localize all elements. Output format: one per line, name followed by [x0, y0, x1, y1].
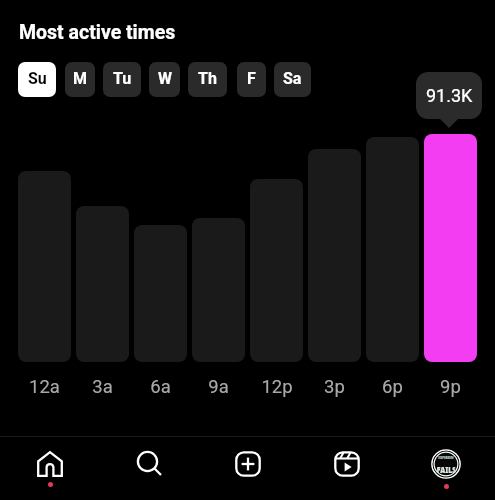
- button[interactable]: Profile: [396, 437, 495, 500]
- staticText: 3p: [324, 376, 345, 398]
- button[interactable]: Th: [188, 62, 227, 97]
- staticText: Su: [28, 69, 47, 88]
- staticText: EXPERIENCE: [438, 455, 454, 460]
- button[interactable]: [424, 134, 477, 362]
- button[interactable]: Create: [198, 437, 297, 500]
- button[interactable]: Search: [99, 437, 198, 500]
- staticText: 3a: [92, 376, 113, 398]
- button[interactable]: Reels: [297, 437, 396, 500]
- staticText: 9p: [440, 376, 461, 398]
- staticText: 91.3K: [426, 85, 473, 106]
- staticText: 9a: [208, 376, 229, 398]
- button[interactable]: F: [237, 62, 266, 97]
- staticText: Most active times: [19, 21, 176, 44]
- staticText: W: [158, 69, 172, 88]
- staticText: F: [247, 69, 256, 88]
- button[interactable]: Su: [18, 62, 56, 97]
- button[interactable]: W: [149, 62, 180, 97]
- staticText: FAILS: [437, 463, 455, 475]
- button[interactable]: Sa: [274, 62, 311, 97]
- staticText: 6p: [382, 376, 403, 398]
- staticText: Tu: [113, 69, 132, 88]
- button[interactable]: Tu: [103, 62, 141, 97]
- staticText: 12a: [29, 376, 60, 398]
- staticText: Th: [198, 69, 217, 88]
- staticText: Sa: [283, 69, 302, 88]
- staticText: M: [73, 69, 88, 88]
- button[interactable]: M: [65, 62, 95, 97]
- staticText: 6a: [150, 376, 171, 398]
- button[interactable]: Home: [0, 437, 99, 500]
- staticText: 12p: [261, 376, 293, 398]
